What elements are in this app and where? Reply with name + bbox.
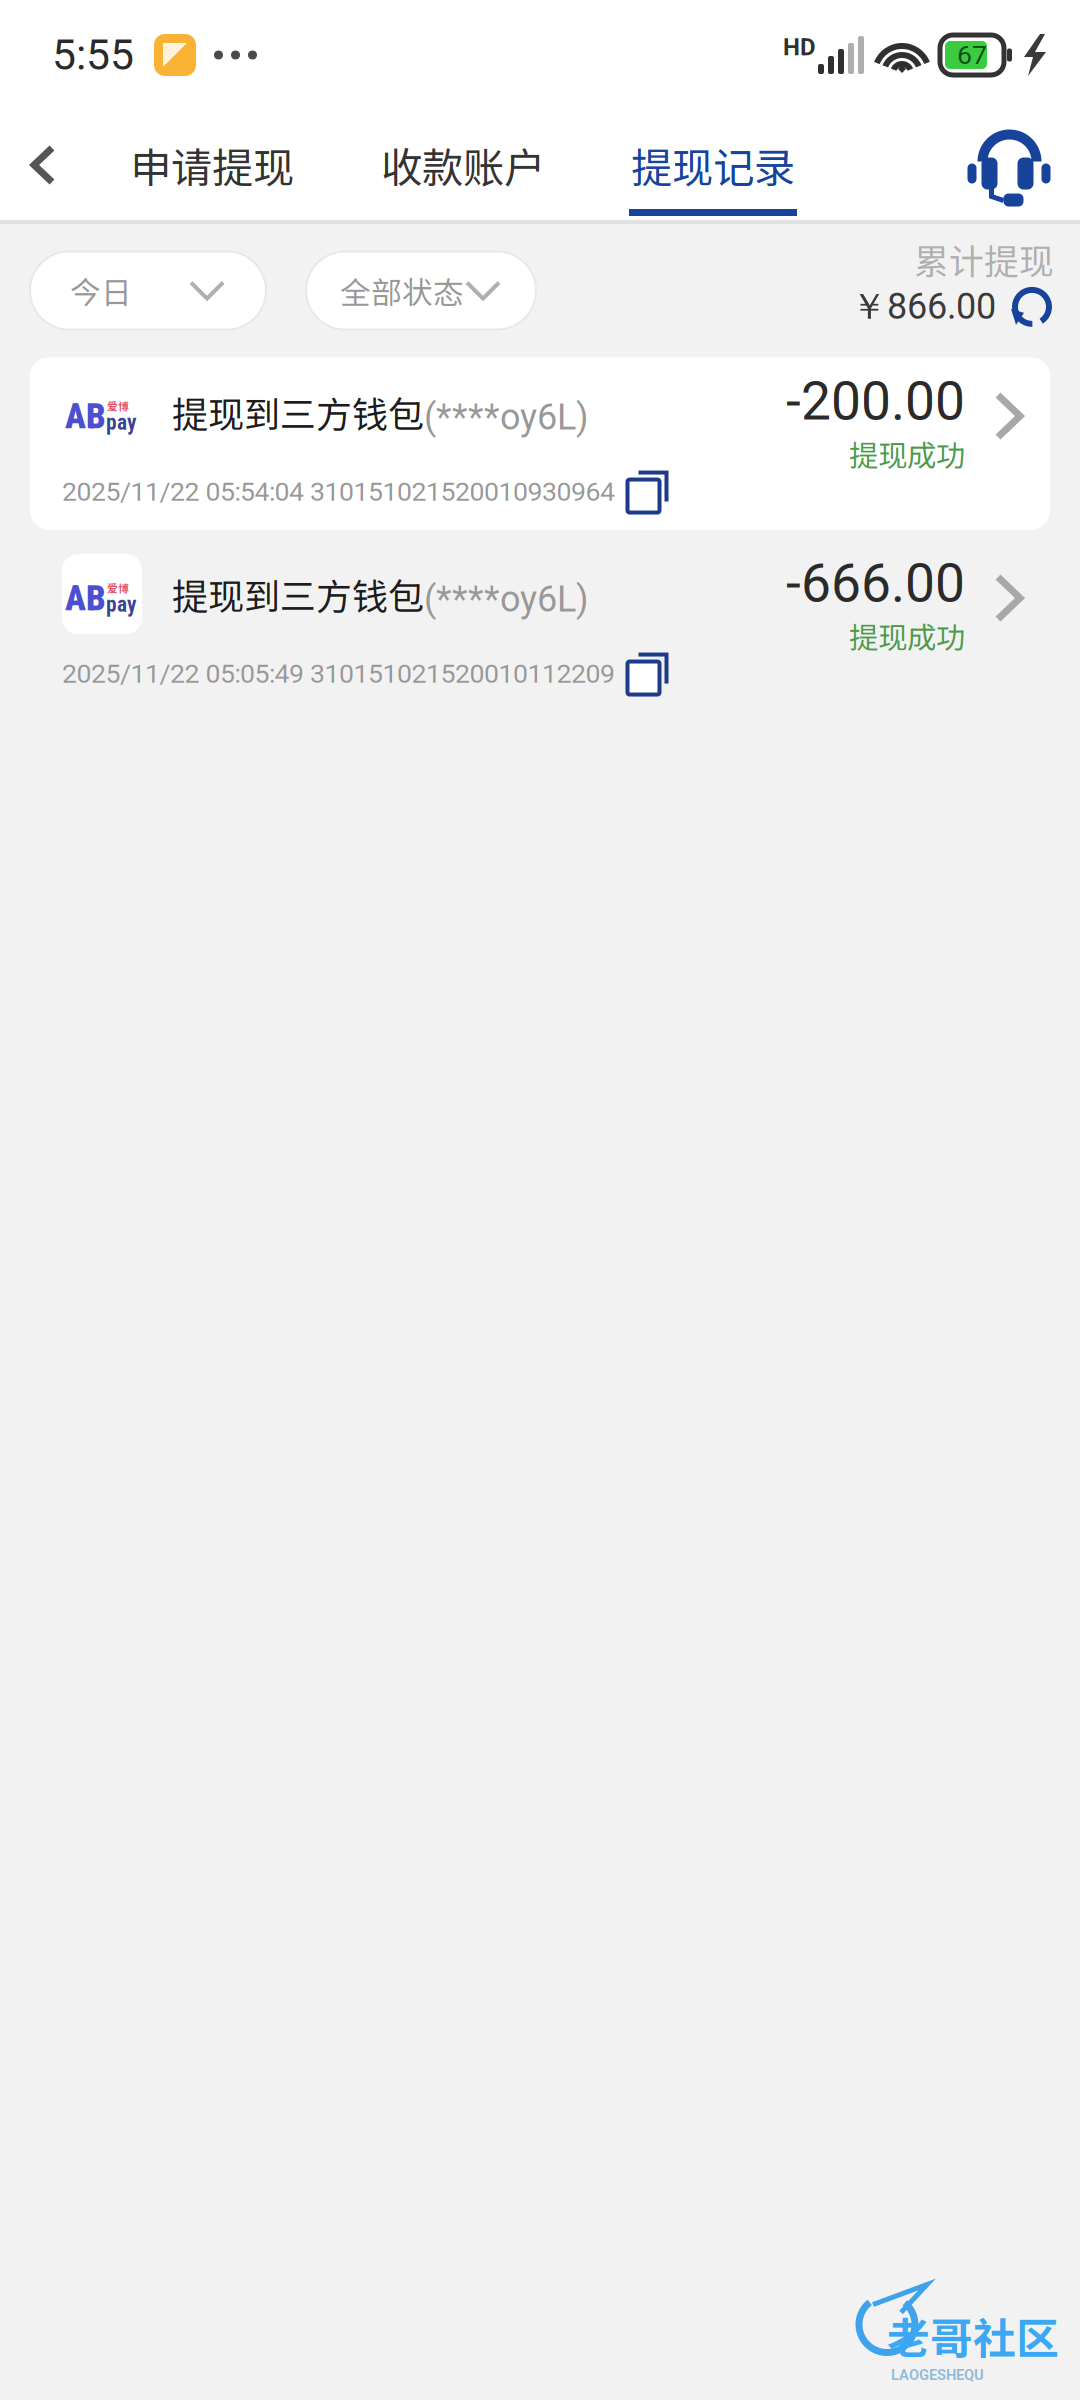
- button[interactable]: 收款账户: [338, 110, 588, 220]
- staticText: 提现到三方钱包: [172, 568, 424, 620]
- staticText: pay: [106, 592, 137, 617]
- staticText: 2025/11/22 05:05:49 31015102152001011220…: [62, 658, 615, 689]
- staticText: 申请提现: [130, 135, 294, 195]
- staticText: 提现记录: [631, 135, 795, 195]
- button[interactable]: 今日: [30, 251, 266, 329]
- staticText: 今日: [70, 268, 132, 313]
- staticText: -200.00: [786, 370, 965, 433]
- button[interactable]: 全部状态: [306, 251, 536, 329]
- staticText: AB: [65, 578, 106, 619]
- staticText: LAOGESHEQU: [891, 2366, 984, 2383]
- button[interactable]: 提现记录: [588, 110, 838, 220]
- staticText: 5:55: [52, 30, 134, 80]
- button[interactable]: 申请提现: [86, 110, 338, 220]
- staticText: 爱博: [107, 580, 129, 595]
- button[interactable]: AB: [30, 357, 1050, 529]
- staticText: 提现到三方钱包: [172, 386, 424, 438]
- staticText: -666.00: [786, 552, 965, 615]
- staticText: 提现成功: [849, 615, 965, 657]
- staticText: 全部状态: [340, 268, 464, 313]
- staticText: 老哥社区: [887, 2304, 1059, 2366]
- staticText: 提现成功: [849, 433, 965, 475]
- staticText: 爱博: [107, 398, 129, 413]
- button[interactable]: Customer service: [958, 110, 1058, 220]
- staticText: (****oy6L): [424, 396, 589, 438]
- staticText: (****oy6L): [424, 578, 589, 620]
- staticText: ￥866.00: [851, 284, 996, 330]
- staticText: AB: [65, 396, 106, 437]
- staticText: pay: [106, 410, 137, 435]
- staticText: 累计提现: [914, 234, 1054, 284]
- button[interactable]: Refresh: [1010, 285, 1054, 329]
- staticText: 收款账户: [381, 135, 545, 195]
- staticText: 2025/11/22 05:54:04 31015102152001093096…: [62, 476, 615, 507]
- button[interactable]: AB: [30, 539, 1050, 711]
- button[interactable]: Back: [0, 110, 86, 220]
- staticText: HD: [783, 33, 816, 61]
- staticText: 67: [957, 39, 987, 71]
